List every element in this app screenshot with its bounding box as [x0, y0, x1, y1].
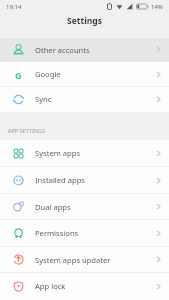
- button[interactable]: Sync: [0, 87, 169, 111]
- button[interactable]: Installed apps: [0, 167, 169, 193]
- staticText: System apps updater: [35, 255, 111, 265]
- button[interactable]: Permissions: [0, 220, 169, 246]
- staticText: Google: [35, 69, 61, 79]
- staticText: 19:14: [6, 3, 22, 11]
- staticText: Other accounts: [35, 45, 90, 55]
- button[interactable]: App lock: [0, 273, 169, 299]
- staticText: Permissions: [35, 228, 79, 238]
- staticText: 14%: [151, 3, 163, 11]
- staticText: Settings: [67, 15, 102, 27]
- button[interactable]: Other accounts: [0, 38, 169, 61]
- button[interactable]: System apps updater: [0, 247, 169, 272]
- staticText: System apps: [35, 148, 81, 158]
- button[interactable]: G: [0, 62, 169, 86]
- button[interactable]: System apps: [0, 140, 169, 166]
- staticText: App lock: [35, 281, 66, 291]
- staticText: Dual apps: [35, 202, 71, 212]
- staticText: Installed apps: [35, 175, 85, 185]
- staticText: APP SETTINGS: [8, 127, 45, 134]
- staticText: G: [15, 69, 22, 80]
- staticText: Sync: [35, 94, 52, 104]
- button[interactable]: Dual apps: [0, 194, 169, 219]
